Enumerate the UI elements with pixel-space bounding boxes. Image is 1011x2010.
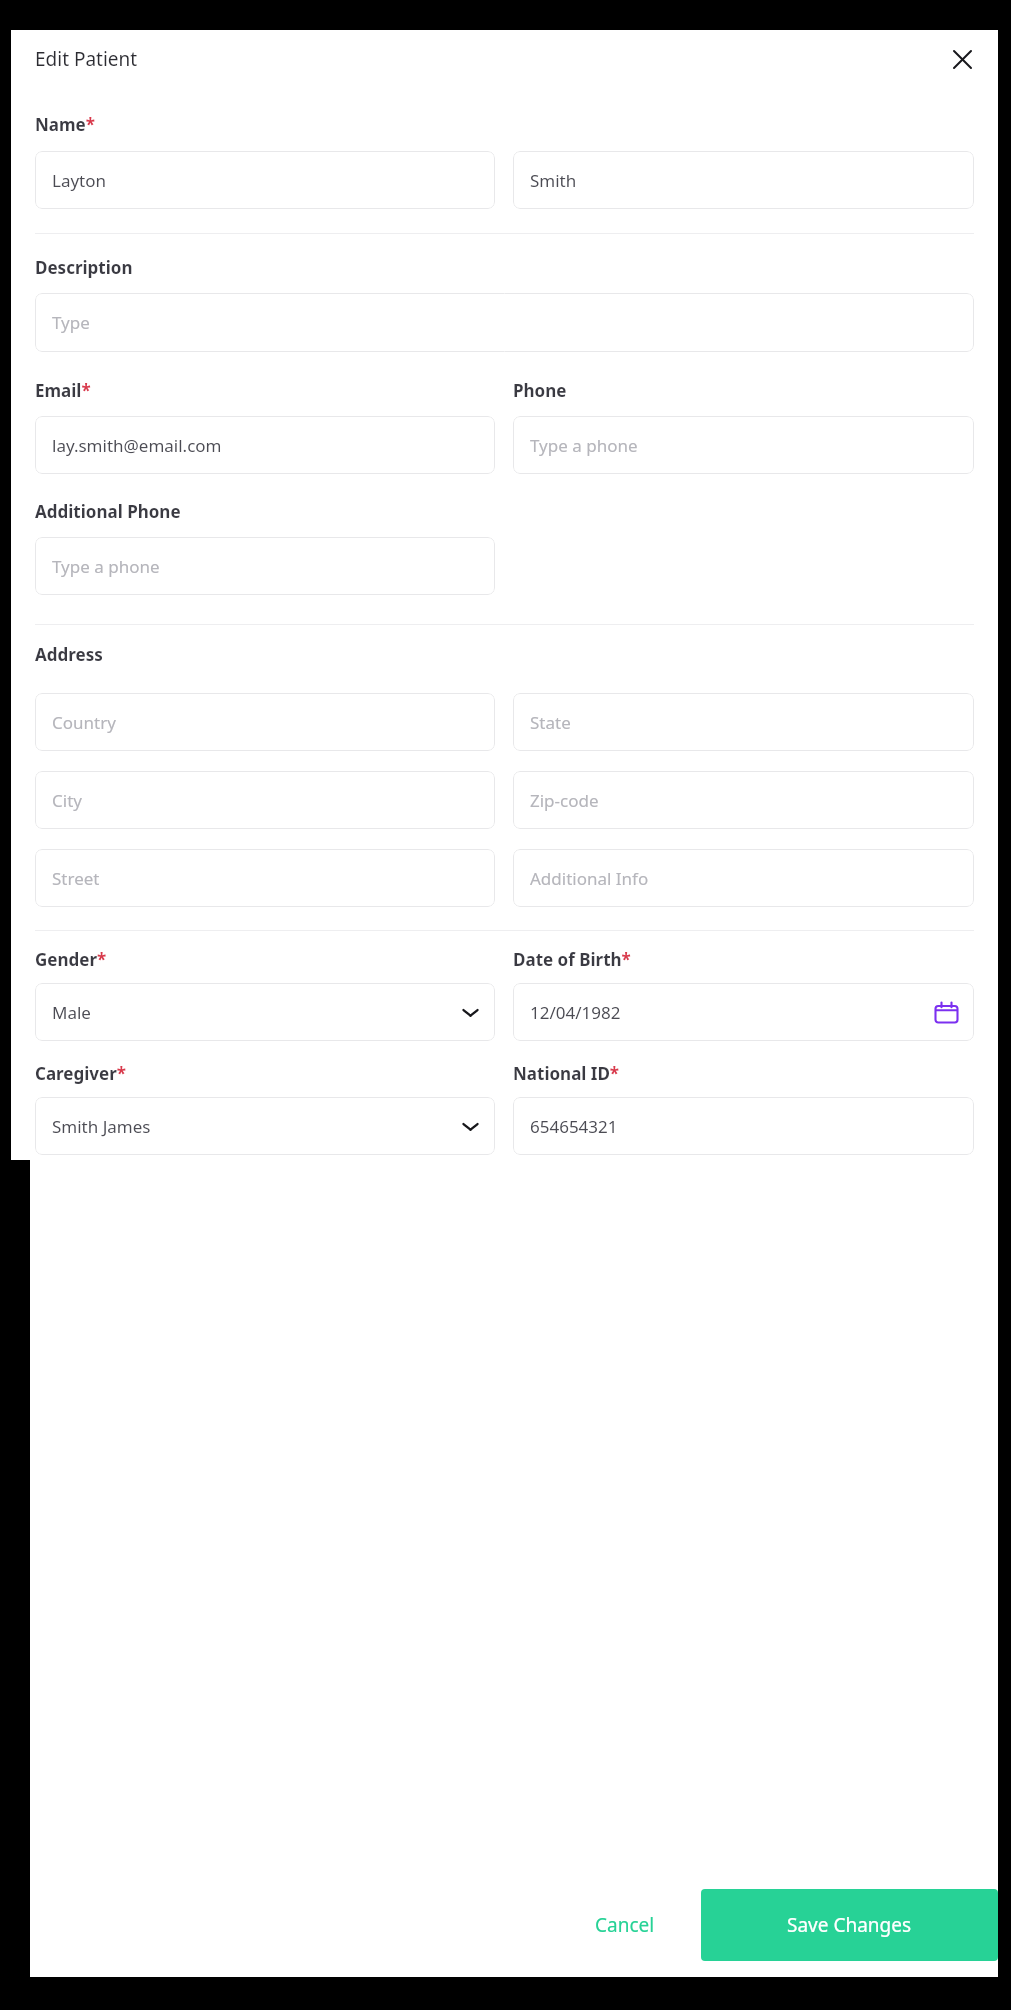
button[interactable]: Street [35,849,495,907]
button[interactable]: Type a phone [513,416,974,474]
button[interactable]: 12/04/1982 [513,983,974,1041]
staticText: Additional Phone [35,500,181,523]
button[interactable]: Layton [35,151,495,209]
button[interactable]: 654654321 [513,1097,974,1155]
staticText: Description [35,256,133,279]
button[interactable]: lay.smith@email.com [35,416,495,474]
button[interactable]: Save Changes [701,1889,998,1961]
staticText: Email* [35,379,91,402]
button[interactable]: State [513,693,974,751]
staticText: 654654321 [530,1115,959,1138]
staticText: 12/04/1982 [530,1001,934,1024]
staticText: Street [52,867,480,890]
button[interactable]: Smith James [35,1097,495,1155]
staticText: Save Changes [787,1912,912,1938]
other: Pick date [934,1000,959,1025]
staticText: Male [52,1001,461,1024]
button[interactable]: Type a phone [35,537,495,595]
button[interactable]: Male [35,983,495,1041]
staticText: Name* [35,113,95,136]
staticText: Address [35,643,103,666]
staticText: lay.smith@email.com [52,434,480,457]
staticText: State [530,711,959,734]
staticText: Gender* [35,948,107,971]
staticText: Smith James [52,1115,461,1138]
button[interactable]: Type [35,293,974,352]
staticText: Layton [52,169,480,192]
button[interactable]: Smith [513,151,974,209]
staticText: Zip-code [530,789,959,812]
staticText: Type a phone [530,434,959,457]
button[interactable]: Close [944,41,980,77]
button[interactable]: Country [35,693,495,751]
staticText: Type a phone [52,555,480,578]
staticText: Additional Info [530,867,959,890]
staticText: City [52,789,480,812]
staticText: Type [52,311,959,334]
staticText: Phone [513,379,567,402]
button[interactable]: Zip-code [513,771,974,829]
staticText: National ID* [513,1062,620,1085]
staticText: Date of Birth* [513,948,631,971]
staticText: Country [52,711,480,734]
staticText: Caregiver* [35,1062,127,1085]
other: Open dropdown [461,1117,480,1136]
staticText: Edit Patient [35,46,138,72]
other: Open dropdown [461,1003,480,1022]
button[interactable]: Cancel [563,1894,687,1956]
staticText: Smith [530,169,959,192]
button[interactable]: City [35,771,495,829]
button[interactable]: Additional Info [513,849,974,907]
staticText: Cancel [595,1912,655,1938]
